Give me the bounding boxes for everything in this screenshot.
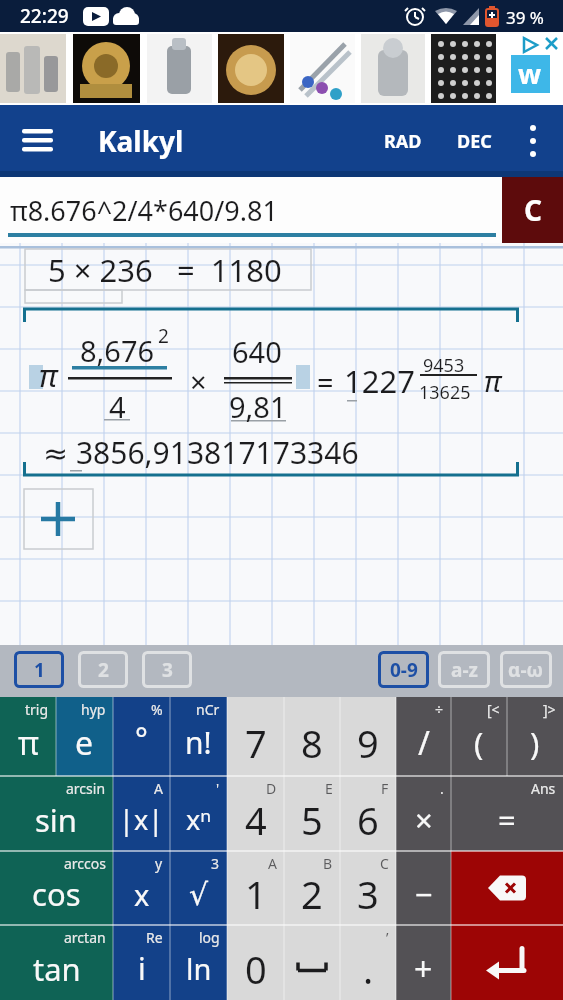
button[interactable]: 0-9 xyxy=(378,651,429,688)
button[interactable]: |x| xyxy=(113,776,170,851)
button[interactable]: 3 xyxy=(340,851,396,925)
button[interactable]: cos xyxy=(0,851,113,925)
staticText: sin xyxy=(35,799,78,841)
staticText: C xyxy=(524,191,542,229)
button[interactable]: xⁿ xyxy=(170,776,227,851)
staticText: C xyxy=(380,854,389,873)
button[interactable]: . xyxy=(340,925,396,1000)
button[interactable] xyxy=(515,117,551,165)
staticText: ) xyxy=(530,722,540,764)
staticText: arctan xyxy=(64,928,106,947)
button[interactable]: a-z xyxy=(438,651,490,688)
staticText: √ xyxy=(189,877,209,912)
staticText: DEC xyxy=(457,129,492,154)
button[interactable]: ( xyxy=(451,697,507,776)
staticText: ]> xyxy=(543,700,556,719)
staticText: log xyxy=(199,928,220,947)
button[interactable]: 6 xyxy=(340,776,396,851)
button[interactable]: √ xyxy=(170,851,227,925)
staticText: 3 xyxy=(357,868,379,920)
staticText: ’ xyxy=(386,928,389,947)
staticText: |x| xyxy=(119,801,164,838)
staticText: π8.676^2/4*640/9.81 xyxy=(10,192,278,229)
staticText: π xyxy=(484,361,501,400)
button[interactable]: tan xyxy=(0,925,113,1000)
button[interactable]: / xyxy=(396,697,451,776)
button[interactable]: + xyxy=(396,925,451,1000)
button[interactable]: RAD xyxy=(375,123,431,159)
staticText: 640 xyxy=(232,332,282,371)
staticText: 8,676 xyxy=(80,331,155,370)
staticText: 4 xyxy=(245,794,267,846)
staticText: arcsin xyxy=(66,779,106,798)
staticText: 8 xyxy=(301,717,323,769)
button[interactable]: 7 xyxy=(227,697,284,776)
button[interactable]: ) xyxy=(507,697,563,776)
button[interactable] xyxy=(12,126,62,156)
button[interactable]: 0 xyxy=(227,925,284,1000)
staticText: F xyxy=(381,779,389,798)
staticText: × xyxy=(415,799,433,841)
button[interactable]: π xyxy=(0,697,56,776)
staticText: y xyxy=(155,854,163,873)
staticText: α-ω xyxy=(508,657,544,683)
staticText: = xyxy=(317,362,334,401)
button[interactable]: × xyxy=(396,776,451,851)
staticText: ÷ xyxy=(435,700,444,719)
button[interactable]: ° xyxy=(113,697,170,776)
button[interactable]: 2 xyxy=(78,651,128,688)
staticText: D xyxy=(266,779,277,798)
staticText: RAD xyxy=(384,129,422,154)
staticText: xⁿ xyxy=(186,801,212,838)
button[interactable] xyxy=(284,925,340,1000)
button[interactable]: i xyxy=(113,925,170,1000)
button[interactable]: 3 xyxy=(142,651,192,688)
staticText: ( xyxy=(474,722,484,764)
staticText: / xyxy=(418,721,430,765)
button[interactable] xyxy=(451,851,563,925)
button[interactable]: − xyxy=(396,851,451,925)
staticText: a-z xyxy=(451,657,478,683)
staticText: ≈ 3856,913817173346 xyxy=(43,432,359,473)
staticText: . xyxy=(363,943,374,995)
staticText: A xyxy=(268,854,277,873)
staticText: A xyxy=(154,779,163,798)
button[interactable]: 2 xyxy=(284,851,340,925)
staticText: 5 xyxy=(301,794,323,846)
staticText: 22:29 xyxy=(20,3,69,29)
staticText: . xyxy=(440,779,444,798)
button[interactable]: e xyxy=(56,697,113,776)
button[interactable] xyxy=(24,489,93,549)
staticText: Kalkyl xyxy=(98,122,184,160)
staticText: % xyxy=(151,700,163,719)
staticText: 7 xyxy=(245,717,267,769)
staticText: w xyxy=(518,55,542,92)
button[interactable]: sin xyxy=(0,776,113,851)
staticText: ln xyxy=(186,949,212,988)
button[interactable]: ln xyxy=(170,925,227,1000)
button[interactable]: 4 xyxy=(227,776,284,851)
button[interactable]: 5 xyxy=(284,776,340,851)
button[interactable]: 9 xyxy=(340,697,396,776)
button[interactable]: x xyxy=(113,851,170,925)
staticText: ' xyxy=(216,779,220,798)
button[interactable]: 1 xyxy=(227,851,284,925)
button[interactable]: α-ω xyxy=(500,651,552,688)
button[interactable]: n! xyxy=(170,697,227,776)
staticText: + xyxy=(414,947,433,991)
staticText: 2 xyxy=(98,657,109,683)
staticText: 2 xyxy=(301,868,323,920)
staticText: [< xyxy=(487,700,500,719)
button[interactable]: = xyxy=(451,776,563,851)
staticText: 9 xyxy=(357,717,379,769)
staticText: hyp xyxy=(81,700,106,719)
button[interactable]: DEC xyxy=(446,123,502,159)
button[interactable]: C xyxy=(502,177,563,243)
button[interactable]: 1 xyxy=(14,651,64,688)
button[interactable]: w xyxy=(0,32,563,105)
staticText: 1 xyxy=(245,868,267,920)
staticText: e xyxy=(75,721,94,765)
button[interactable] xyxy=(451,925,563,1000)
button[interactable]: 8 xyxy=(284,697,340,776)
staticText: nCr xyxy=(196,700,220,719)
